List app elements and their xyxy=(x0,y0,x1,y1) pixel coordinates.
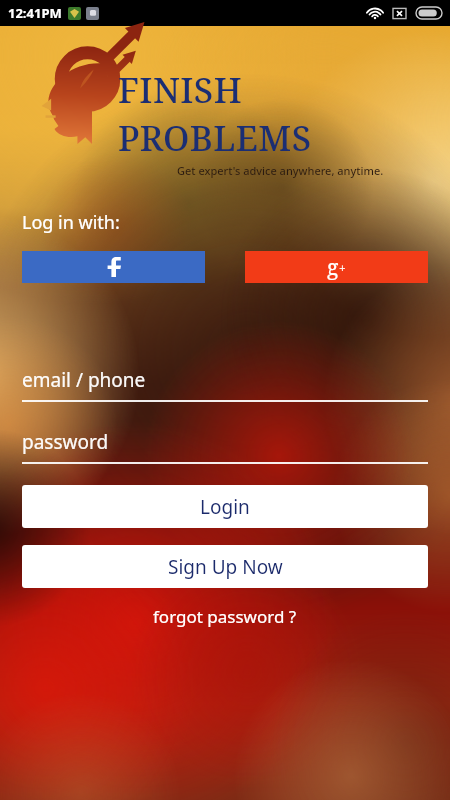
button[interactable]: password xyxy=(22,429,428,464)
staticText: + xyxy=(339,260,346,276)
staticText: FINISH PROBLEMS xyxy=(118,66,442,162)
button[interactable]: Sign Up Now xyxy=(22,545,428,588)
staticText: 12:41PM xyxy=(8,4,62,22)
staticText: Sign Up Now xyxy=(168,554,283,580)
staticText: password xyxy=(22,429,109,455)
staticText: g xyxy=(327,253,339,282)
button[interactable]: Log in with Facebook xyxy=(22,251,205,283)
button[interactable]: Log in with Google Plus xyxy=(245,251,428,283)
staticText: email / phone xyxy=(22,367,146,393)
staticText: forgot password ? xyxy=(153,605,297,628)
button[interactable]: email / phone xyxy=(22,367,428,402)
staticText: Get expert's advice anywhere, anytime. xyxy=(177,163,384,178)
button[interactable]: Login xyxy=(22,485,428,528)
staticText: Log in with: xyxy=(22,210,120,235)
staticText: Login xyxy=(200,494,250,520)
button[interactable]: forgot password ? xyxy=(0,601,450,631)
